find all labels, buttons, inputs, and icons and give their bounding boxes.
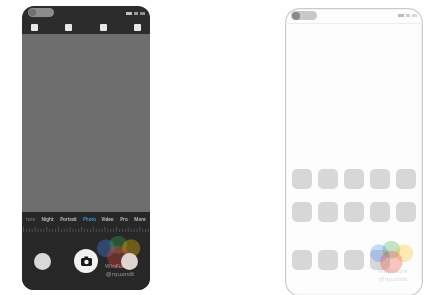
button[interactable]: Settings	[134, 24, 141, 31]
button[interactable]: Photo	[82, 216, 97, 222]
staticText: Night	[41, 216, 54, 222]
button[interactable]: App 0	[292, 202, 312, 222]
button[interactable]: App 3	[370, 169, 390, 189]
button[interactable]: App 13	[370, 250, 390, 270]
staticText: @rquandt	[106, 270, 135, 278]
button[interactable]: App 2	[344, 169, 364, 189]
button[interactable]: Switch camera	[121, 253, 138, 270]
button[interactable]: App 2	[344, 202, 364, 222]
button[interactable]: Pro	[119, 216, 129, 222]
staticText: WinFuture	[378, 267, 408, 275]
staticText: More	[134, 216, 146, 222]
button[interactable]: Flash	[31, 24, 38, 31]
button[interactable]: App 10	[292, 250, 312, 270]
button[interactable]: Video	[100, 216, 115, 222]
button[interactable]: App 0	[292, 169, 312, 189]
button[interactable]: App 11	[318, 250, 338, 270]
button[interactable]: App 4	[396, 202, 416, 222]
button[interactable]: Gallery	[34, 253, 51, 270]
staticText: Pro	[120, 216, 128, 222]
staticText: Photo	[83, 216, 96, 222]
staticText: @rquandt	[379, 275, 408, 283]
button[interactable]: ture	[25, 216, 36, 222]
button[interactable]: App 1	[318, 169, 338, 189]
staticText: Video	[101, 216, 114, 222]
button[interactable]: HDR	[65, 24, 72, 31]
button[interactable]: More	[133, 216, 147, 222]
button[interactable]: Night	[40, 216, 55, 222]
button[interactable]: App 3	[370, 202, 390, 222]
button[interactable]: App 1	[318, 202, 338, 222]
staticText: Portrait	[60, 216, 77, 222]
button[interactable]: Shutter	[74, 249, 98, 273]
staticText: WinFuture	[105, 262, 135, 270]
button[interactable]: Portrait	[59, 216, 78, 222]
staticText: ture	[26, 216, 35, 222]
button[interactable]: App 12	[344, 250, 364, 270]
button[interactable]: App 4	[396, 169, 416, 189]
button[interactable]: Timer	[100, 24, 107, 31]
